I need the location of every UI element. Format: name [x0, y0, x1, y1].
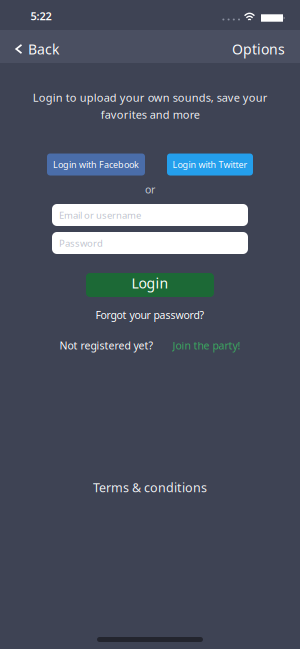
button[interactable]: Options — [232, 37, 300, 56]
staticText: Join the party! — [172, 338, 240, 353]
staticText: Login with Twitter — [172, 158, 247, 171]
button[interactable]: Join the party! — [172, 338, 240, 353]
staticText: Terms & conditions — [93, 479, 207, 496]
button[interactable]: Back — [0, 37, 59, 56]
staticText: Login with Facebook — [53, 158, 139, 171]
staticText: 5:22 — [30, 8, 51, 23]
staticText: Email or username — [59, 208, 141, 221]
staticText: Back — [28, 39, 59, 59]
staticText: Options — [232, 39, 285, 59]
staticText: Login to upload your own sounds, save yo… — [32, 90, 267, 122]
button[interactable]: Login with Facebook — [47, 153, 145, 175]
staticText: or — [145, 182, 155, 197]
button[interactable]: Terms & conditions — [93, 480, 207, 494]
staticText: Login — [131, 273, 168, 293]
staticText: Not registered yet? — [59, 338, 153, 353]
button[interactable]: Forgot your password? — [95, 308, 204, 321]
staticText: Password — [59, 236, 103, 249]
staticText: Forgot your password? — [95, 308, 204, 322]
button[interactable]: Login — [86, 273, 214, 297]
button[interactable]: Login with Twitter — [167, 153, 253, 175]
button[interactable]: Password — [52, 232, 248, 254]
button[interactable]: Email or username — [52, 204, 248, 226]
